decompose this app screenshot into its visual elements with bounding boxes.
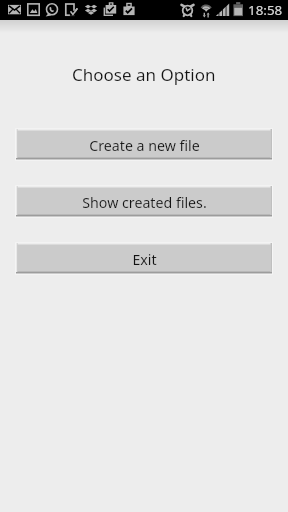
staticText: Exit — [132, 250, 157, 269]
button[interactable]: Exit — [16, 243, 272, 274]
staticText: Create a new file — [89, 136, 200, 155]
staticText: Show created files. — [82, 193, 207, 212]
button[interactable]: Create a new file — [16, 129, 272, 160]
other: Notification and status icons — [0, 0, 288, 20]
staticText: Choose an Option — [72, 63, 216, 86]
staticText: 18:58 — [248, 1, 283, 19]
button[interactable]: Show created files. — [16, 186, 272, 217]
